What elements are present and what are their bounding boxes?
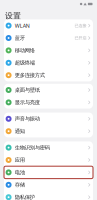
button[interactable]: 桌面与壁纸 bbox=[4, 84, 93, 96]
staticText: 更多连接方式 bbox=[15, 72, 45, 78]
staticText: 隐私保护 bbox=[15, 194, 35, 200]
staticText: 超级终端 bbox=[15, 59, 35, 66]
button[interactable]: 电池 bbox=[4, 166, 93, 179]
button[interactable]: 通知 bbox=[4, 125, 93, 137]
button[interactable]: 移动网络 bbox=[4, 44, 93, 57]
staticText: 应用 bbox=[15, 157, 25, 163]
staticText: 通知 bbox=[15, 128, 25, 134]
staticText: 生物识别与密码 bbox=[15, 144, 50, 151]
button[interactable]: 隐私保护 bbox=[4, 191, 93, 200]
button[interactable]: 超级终端 bbox=[4, 57, 93, 69]
button[interactable]: 声音与振动 bbox=[4, 113, 93, 125]
button[interactable]: 生物识别与密码 bbox=[4, 141, 93, 154]
button[interactable]: 显示与亮度 bbox=[4, 96, 93, 109]
staticText: 设置 bbox=[5, 11, 21, 21]
staticText: 已连接 bbox=[74, 23, 86, 28]
staticText: 已开启 bbox=[74, 35, 86, 40]
button[interactable]: 蓝牙 bbox=[4, 32, 93, 44]
staticText: 声音与振动 bbox=[15, 115, 40, 122]
button[interactable]: WLAN bbox=[4, 19, 93, 32]
button[interactable]: 应用 bbox=[4, 154, 93, 166]
staticText: 桌面与壁纸 bbox=[15, 87, 40, 93]
button[interactable]: 更多连接方式 bbox=[4, 69, 93, 81]
staticText: 蓝牙 bbox=[15, 35, 25, 41]
staticText: 显示与亮度 bbox=[15, 99, 40, 106]
staticText: 存储 bbox=[15, 181, 25, 188]
staticText: 电池 bbox=[15, 169, 25, 176]
staticText: 移动网络 bbox=[15, 47, 35, 54]
button[interactable]: 存储 bbox=[4, 179, 93, 191]
staticText: WLAN bbox=[15, 22, 30, 29]
